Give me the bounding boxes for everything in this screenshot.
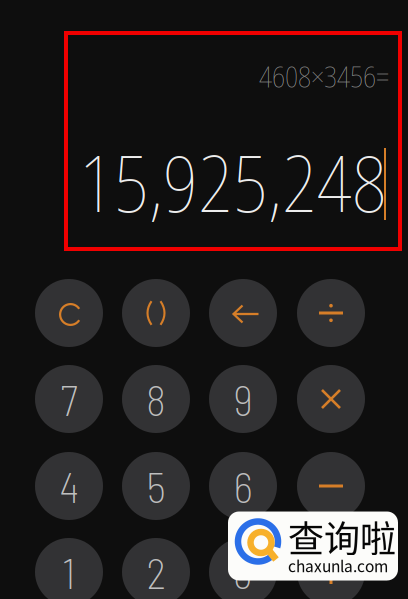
staticText: 9 <box>233 373 252 425</box>
button[interactable]: Multiply <box>297 365 365 433</box>
button[interactable]: Minus <box>297 452 365 520</box>
staticText: 4 <box>59 460 78 512</box>
button[interactable]: Clear <box>35 279 103 347</box>
button[interactable]: Plus <box>297 538 365 599</box>
staticText: 5 <box>146 460 165 512</box>
staticText: 查询啦 <box>288 510 396 562</box>
staticText: chaxunla.com <box>288 554 388 577</box>
staticText: 8 <box>146 373 166 425</box>
button[interactable]: 2 <box>122 538 190 599</box>
button[interactable]: 1 <box>35 538 103 599</box>
button[interactable]: 9 <box>209 365 277 433</box>
staticText: 1 <box>62 546 75 598</box>
staticText: 3 <box>233 546 252 598</box>
button[interactable]: 6 <box>209 452 277 520</box>
staticText: 15,925,248 <box>79 129 387 235</box>
button[interactable]: 7 <box>35 365 103 433</box>
button[interactable]: Parentheses <box>122 279 190 347</box>
staticText: 4608×3456= <box>259 56 389 96</box>
button[interactable]: 3 <box>209 538 277 599</box>
button[interactable]: 8 <box>122 365 190 433</box>
button[interactable]: 5 <box>122 452 190 520</box>
staticText: 2 <box>146 546 165 598</box>
button[interactable]: Divide <box>297 279 365 347</box>
staticText: 7 <box>60 373 77 425</box>
button[interactable]: 4 <box>35 452 103 520</box>
staticText: 6 <box>233 460 252 512</box>
button[interactable]: Backspace <box>209 279 277 347</box>
